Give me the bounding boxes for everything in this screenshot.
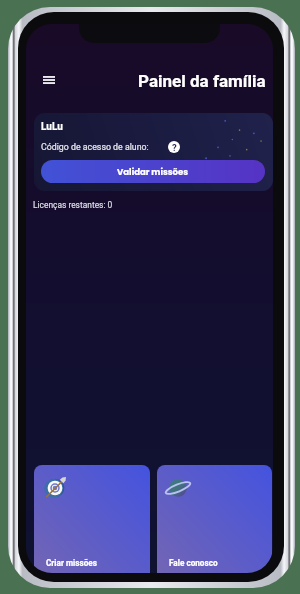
staticText: ? <box>172 142 177 153</box>
button[interactable]: Fale conosco <box>157 465 272 573</box>
staticText: Código de acesso de aluno: <box>41 142 149 152</box>
button[interactable]: Criar missões <box>34 465 150 573</box>
staticText: Fale conosco <box>169 558 218 568</box>
staticText: LuLu <box>41 121 63 133</box>
staticText: Validar missões <box>117 166 189 178</box>
button[interactable]: Menu <box>34 70 64 90</box>
button[interactable]: Ajuda <box>168 141 180 153</box>
button[interactable]: Validar missões <box>41 160 265 183</box>
staticText: Painel da família <box>138 71 266 91</box>
staticText: Licenças restantes: 0 <box>33 200 113 210</box>
staticText: Criar missões <box>46 558 97 568</box>
